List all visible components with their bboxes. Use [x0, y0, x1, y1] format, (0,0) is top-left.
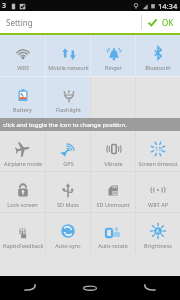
staticText: Auto-sync — [55, 242, 81, 249]
staticText: SD Unmount — [96, 201, 130, 208]
staticText: Flashlight — [56, 106, 81, 113]
button[interactable]: WIFI — [0, 35, 45, 76]
button[interactable]: Mobile network — [46, 35, 90, 76]
button[interactable]: Vibrate — [91, 131, 135, 171]
button[interactable]: Airplane mode — [0, 131, 45, 171]
button[interactable]: Recent apps — [120, 276, 180, 300]
staticText: HapticFeedback — [2, 242, 44, 249]
button[interactable]: Battery — [0, 77, 45, 118]
staticText: Bluetooth — [145, 64, 171, 71]
button[interactable]: SD — [91, 172, 135, 212]
staticText: click and toggle the icon to change posi… — [3, 121, 127, 129]
button[interactable]: GPS — [46, 131, 90, 171]
staticText: Lock screen — [7, 201, 38, 208]
staticText: Ringer — [105, 64, 122, 71]
staticText: Battery — [13, 106, 32, 113]
staticText: Auto-rotate — [98, 242, 128, 249]
button[interactable]: 15 — [136, 131, 180, 171]
button[interactable]: Auto-rotate — [91, 213, 135, 253]
button[interactable]: Back — [0, 276, 60, 300]
button[interactable]: HapticFeedback — [0, 213, 45, 253]
button[interactable]: Auto-sync — [46, 213, 90, 253]
button[interactable]: A — [136, 213, 180, 253]
staticText: Brightness — [144, 242, 172, 249]
staticText: Vibrate — [104, 160, 123, 167]
button[interactable]: Home — [60, 276, 120, 300]
staticText: Setting — [6, 17, 33, 28]
staticText: OK — [162, 17, 174, 28]
staticText: Screen timeout — [138, 160, 178, 167]
button[interactable]: SD Mass — [46, 172, 90, 212]
staticText: WIFI AP — [148, 201, 168, 208]
staticText: SD — [112, 190, 118, 196]
staticText: 14:34 — [158, 1, 178, 11]
staticText: GPS — [63, 160, 74, 167]
button[interactable]: Ringer — [91, 35, 135, 76]
staticText: A — [156, 228, 160, 235]
staticText: WIFI — [17, 64, 29, 71]
button[interactable]: Lock screen — [0, 172, 45, 212]
staticText: SD Mass — [57, 201, 79, 208]
staticText: Airplane mode — [4, 160, 42, 167]
button[interactable]: Flashlight — [46, 77, 90, 118]
staticText: Mobile network — [48, 64, 89, 71]
button[interactable]: OK — [141, 11, 180, 33]
staticText: 15 — [155, 145, 162, 153]
staticText: 3 — [2, 1, 7, 11]
button[interactable]: WIFI AP — [136, 172, 180, 212]
button[interactable]: Bluetooth — [136, 35, 180, 76]
